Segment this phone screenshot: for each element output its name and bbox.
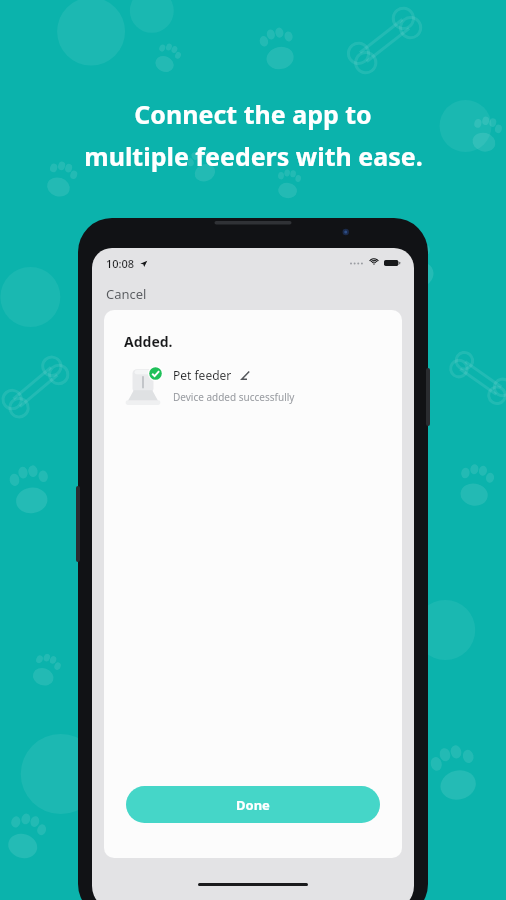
button[interactable]: Done bbox=[126, 786, 380, 823]
staticText: 10:08 bbox=[106, 256, 135, 271]
staticText: multiple feeders with ease. bbox=[84, 139, 423, 173]
button[interactable]: Rename device bbox=[239, 369, 252, 382]
staticText: Done bbox=[236, 796, 270, 814]
staticText: Cancel bbox=[106, 285, 147, 303]
staticText: Added. bbox=[124, 332, 173, 351]
button[interactable]: Cancel bbox=[92, 278, 414, 310]
staticText: Pet feeder bbox=[173, 367, 232, 383]
staticText: Connect the app to bbox=[134, 97, 372, 131]
staticText: Device added successfully bbox=[173, 390, 295, 404]
button[interactable]: Pet feeder bbox=[122, 365, 384, 407]
